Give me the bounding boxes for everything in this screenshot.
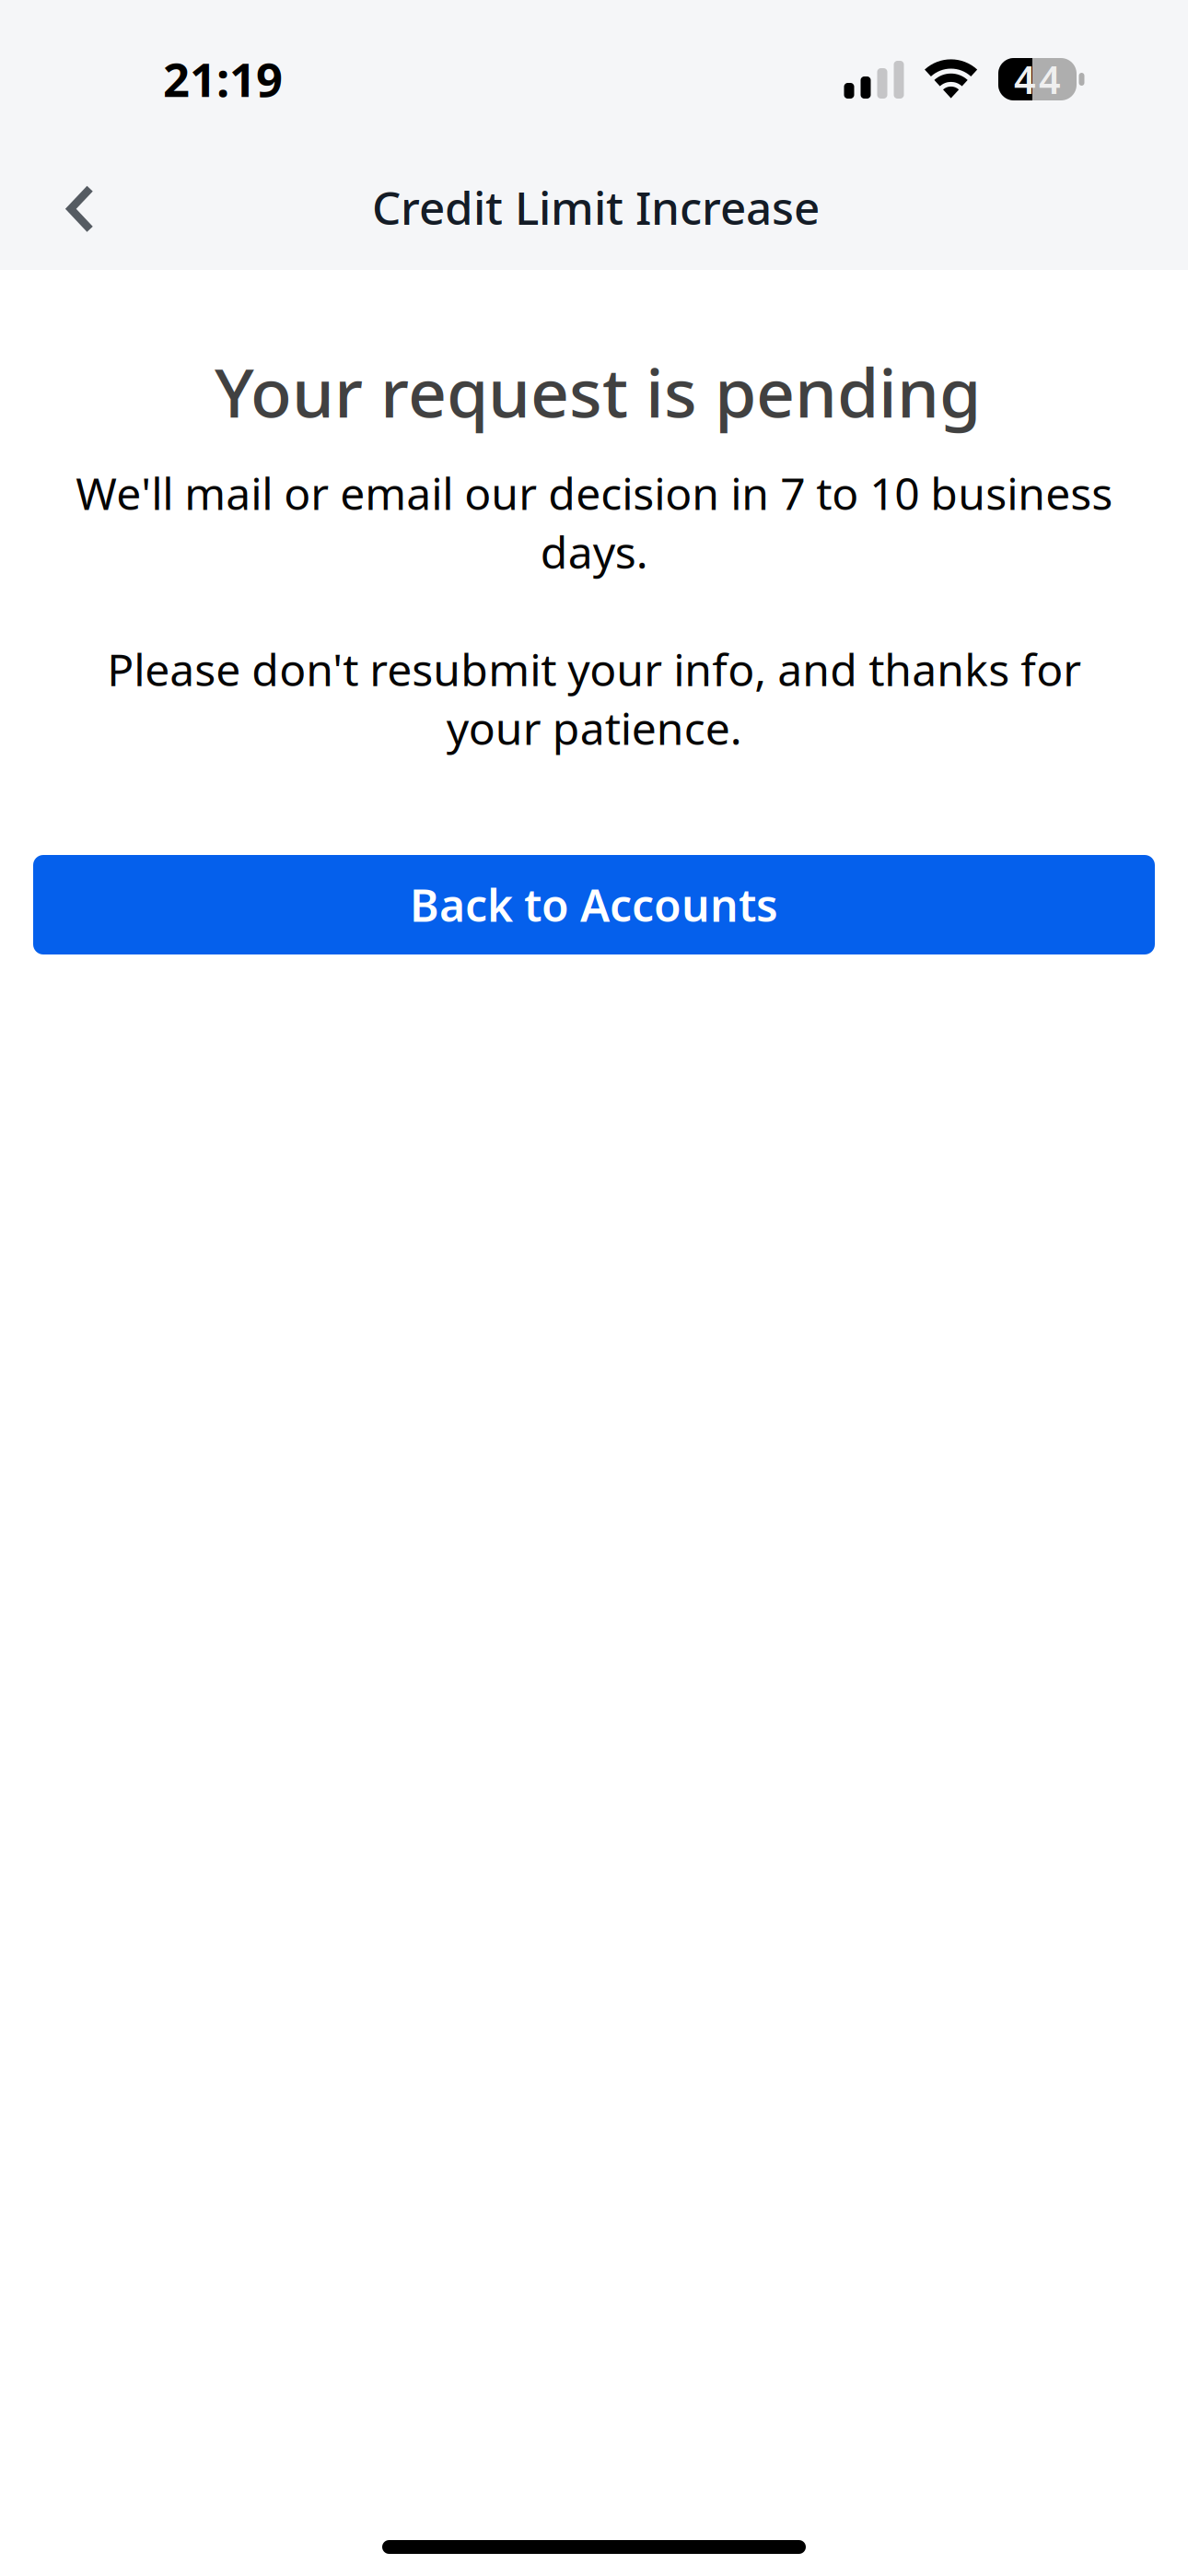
staticText: Your request is pending <box>215 346 981 436</box>
staticText: Credit Limit Increase <box>372 177 820 237</box>
button[interactable]: Back <box>33 163 125 255</box>
button[interactable]: Back to Accounts <box>33 855 1155 954</box>
staticText: 21:19 <box>163 48 283 110</box>
staticText: 44 <box>1014 54 1061 105</box>
staticText: Back to Accounts <box>410 875 778 934</box>
staticText: We'll mail or email our decision in 7 to… <box>76 463 1112 757</box>
